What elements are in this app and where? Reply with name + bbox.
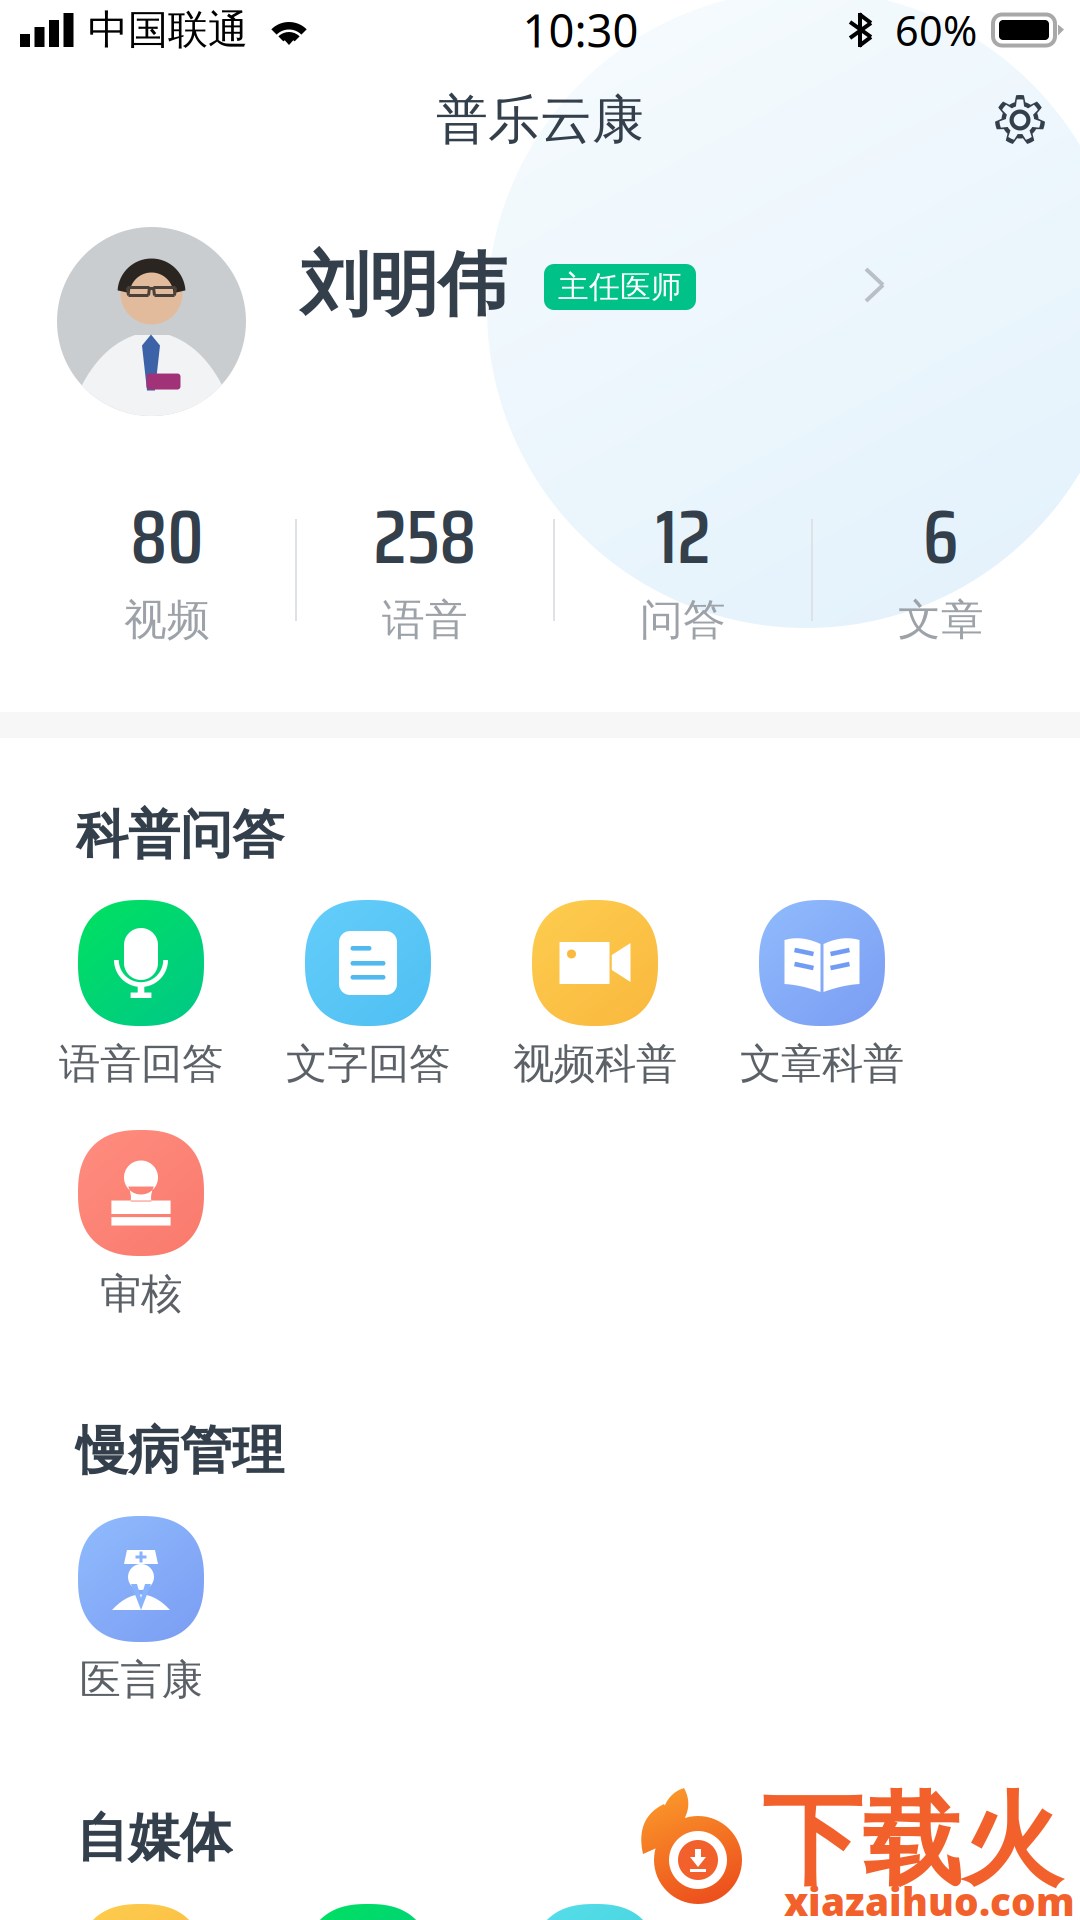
button[interactable]: 258 xyxy=(297,470,553,670)
staticText: 258 xyxy=(373,478,476,596)
button[interactable] xyxy=(255,1904,482,1920)
staticText: 中国联通 xyxy=(88,5,248,54)
staticText: 语音 xyxy=(382,594,468,646)
staticText: 视频 xyxy=(124,594,210,646)
staticText: 60% xyxy=(895,3,977,57)
staticText: 审核 xyxy=(100,1269,182,1319)
button[interactable]: 80 xyxy=(39,470,295,670)
staticText: 医言康 xyxy=(79,1655,202,1705)
button[interactable]: 语音回答 xyxy=(28,900,255,1090)
staticText: 10:30 xyxy=(522,0,638,60)
staticText: 自媒体 xyxy=(76,1806,232,1870)
staticText: 普乐云康 xyxy=(436,88,644,152)
staticText: 科普问答 xyxy=(76,803,284,867)
button[interactable]: 刘明伟 xyxy=(0,180,1080,470)
staticText: 语音回答 xyxy=(59,1039,223,1089)
staticText: 文章 xyxy=(898,594,984,646)
button[interactable] xyxy=(28,1904,255,1920)
staticText: 主任医师 xyxy=(558,268,682,306)
staticText: xiazaihuo.com xyxy=(784,1875,1075,1920)
button[interactable]: 文章科普 xyxy=(709,900,936,1090)
button[interactable]: 文字回答 xyxy=(255,900,482,1090)
button[interactable]: 审核 xyxy=(28,1130,255,1320)
button[interactable]: 12 xyxy=(555,470,811,670)
staticText: 刘明伟 xyxy=(300,242,507,328)
staticText: 问答 xyxy=(640,594,726,646)
staticText: 12 xyxy=(655,478,710,596)
staticText: 文字回答 xyxy=(286,1039,450,1089)
staticText: 80 xyxy=(130,478,203,596)
button[interactable]: 视频科普 xyxy=(482,900,709,1090)
button[interactable] xyxy=(482,1904,709,1920)
button[interactable]: 医言康 xyxy=(28,1516,255,1706)
staticText: 视频科普 xyxy=(513,1039,677,1089)
staticText: 6 xyxy=(923,478,959,596)
staticText: 慢病管理 xyxy=(76,1419,284,1483)
button[interactable]: 6 xyxy=(813,470,1069,670)
staticText: 下载火 xyxy=(762,1780,1062,1902)
staticText: 文章科普 xyxy=(740,1039,904,1089)
button[interactable]: Settings xyxy=(978,78,1062,162)
